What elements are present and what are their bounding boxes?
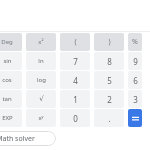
staticText: 9 xyxy=(133,56,138,67)
staticText: 4 xyxy=(73,75,78,86)
button[interactable]: cos xyxy=(0,71,22,89)
button[interactable]: Math solver xyxy=(0,131,56,146)
button[interactable]: 5 xyxy=(94,71,124,89)
button[interactable]: 0 xyxy=(60,109,90,127)
button[interactable]: 7 xyxy=(60,52,90,70)
staticText: cos xyxy=(2,76,12,84)
staticText: 7 xyxy=(73,56,78,67)
staticText: 2 xyxy=(107,94,112,105)
staticText: 8 xyxy=(107,56,112,67)
staticText: ln xyxy=(38,57,44,65)
staticText: Math solver xyxy=(0,134,35,144)
staticText: sin xyxy=(3,57,12,65)
button[interactable]: 3 xyxy=(128,90,142,108)
button[interactable]: Deg xyxy=(0,33,22,51)
button[interactable]: ) xyxy=(94,33,124,51)
staticText: log xyxy=(37,76,46,84)
staticText: 6 xyxy=(133,75,138,86)
button[interactable]: tan xyxy=(0,90,22,108)
button[interactable]: 8 xyxy=(94,52,124,70)
staticText: 0 xyxy=(73,113,78,124)
button[interactable]: 9 xyxy=(128,52,142,70)
button[interactable]: √ xyxy=(26,90,56,108)
staticText: xʸ xyxy=(38,114,44,122)
staticText: 3 xyxy=(133,94,138,105)
button[interactable]: 1 xyxy=(60,90,90,108)
button[interactable]: Equals xyxy=(128,109,142,127)
staticText: Deg xyxy=(1,38,13,46)
button[interactable]: 6 xyxy=(128,71,142,89)
staticText: % xyxy=(132,37,138,47)
button[interactable]: 2 xyxy=(94,90,124,108)
staticText: √ xyxy=(39,95,44,103)
staticText: . xyxy=(108,113,111,124)
staticText: tan xyxy=(2,95,12,103)
staticText: 5 xyxy=(107,75,112,86)
button[interactable]: ( xyxy=(60,33,90,51)
button[interactable]: EXP xyxy=(0,109,22,127)
button[interactable]: log xyxy=(26,71,56,89)
staticText: 1 xyxy=(73,94,78,105)
staticText: x² xyxy=(38,38,44,46)
staticText: ( xyxy=(74,37,77,47)
button[interactable]: ln xyxy=(26,52,56,70)
button[interactable]: . xyxy=(94,109,124,127)
button[interactable]: xʸ xyxy=(26,109,56,127)
staticText: EXP xyxy=(2,114,13,122)
button[interactable]: % xyxy=(128,33,142,51)
button[interactable]: x² xyxy=(26,33,56,51)
staticText: ) xyxy=(108,37,111,47)
button[interactable]: 4 xyxy=(60,71,90,89)
button[interactable]: sin xyxy=(0,52,22,70)
